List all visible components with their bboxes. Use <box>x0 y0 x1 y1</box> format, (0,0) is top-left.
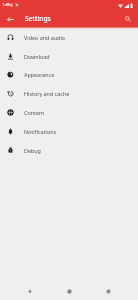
staticText: Debug <box>24 147 41 154</box>
staticText: Content <box>24 109 45 116</box>
button[interactable]: Notifications <box>0 122 138 141</box>
button[interactable]: Back <box>4 13 16 25</box>
staticText: 1:46 <box>2 2 11 8</box>
staticText: Appearance <box>24 71 55 78</box>
button[interactable]: Appearance <box>0 65 138 84</box>
staticText: Settings <box>25 14 51 23</box>
button[interactable]: Download <box>0 47 138 66</box>
button[interactable]: Search <box>122 13 134 25</box>
staticText: History and cache <box>24 90 70 97</box>
button[interactable]: Content <box>0 103 138 122</box>
button[interactable]: Back <box>22 284 36 298</box>
button[interactable]: Debug <box>0 141 138 160</box>
button[interactable]: History and cache <box>0 84 138 103</box>
button[interactable]: Recent apps <box>101 284 115 298</box>
staticText: Download <box>24 53 50 60</box>
button[interactable]: Video and audio <box>0 28 138 47</box>
button[interactable]: Home <box>62 284 76 298</box>
staticText: Notifications <box>24 128 57 135</box>
staticText: Video and audio <box>24 34 66 41</box>
